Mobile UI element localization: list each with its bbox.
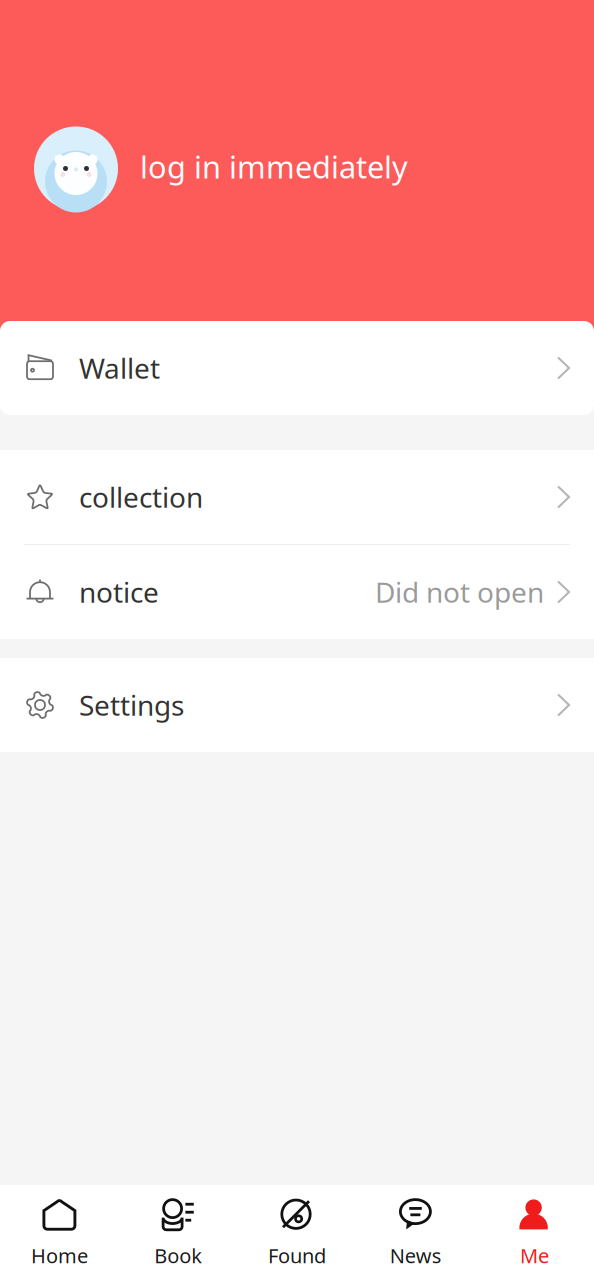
staticText: collection xyxy=(79,478,203,516)
staticText: Settings xyxy=(79,686,184,724)
button[interactable]: Home xyxy=(0,1185,119,1280)
staticText: log in immediately xyxy=(140,146,408,187)
button[interactable]: Found xyxy=(238,1185,356,1280)
button[interactable]: Wallet xyxy=(0,321,594,415)
staticText: News xyxy=(390,1242,442,1269)
staticText: Found xyxy=(268,1242,326,1269)
button[interactable]: News xyxy=(356,1185,475,1280)
staticText: notice xyxy=(79,573,159,611)
staticText: Me xyxy=(520,1242,549,1269)
staticText: Home xyxy=(31,1242,88,1269)
staticText: Did not open xyxy=(375,573,544,611)
button[interactable]: Me xyxy=(475,1185,594,1280)
staticText: Wallet xyxy=(79,349,160,387)
staticText: Book xyxy=(154,1242,202,1269)
button[interactable]: Book xyxy=(119,1185,238,1280)
button[interactable]: collection xyxy=(0,450,594,544)
button[interactable]: Settings xyxy=(0,658,594,752)
button[interactable]: notice xyxy=(0,545,594,639)
